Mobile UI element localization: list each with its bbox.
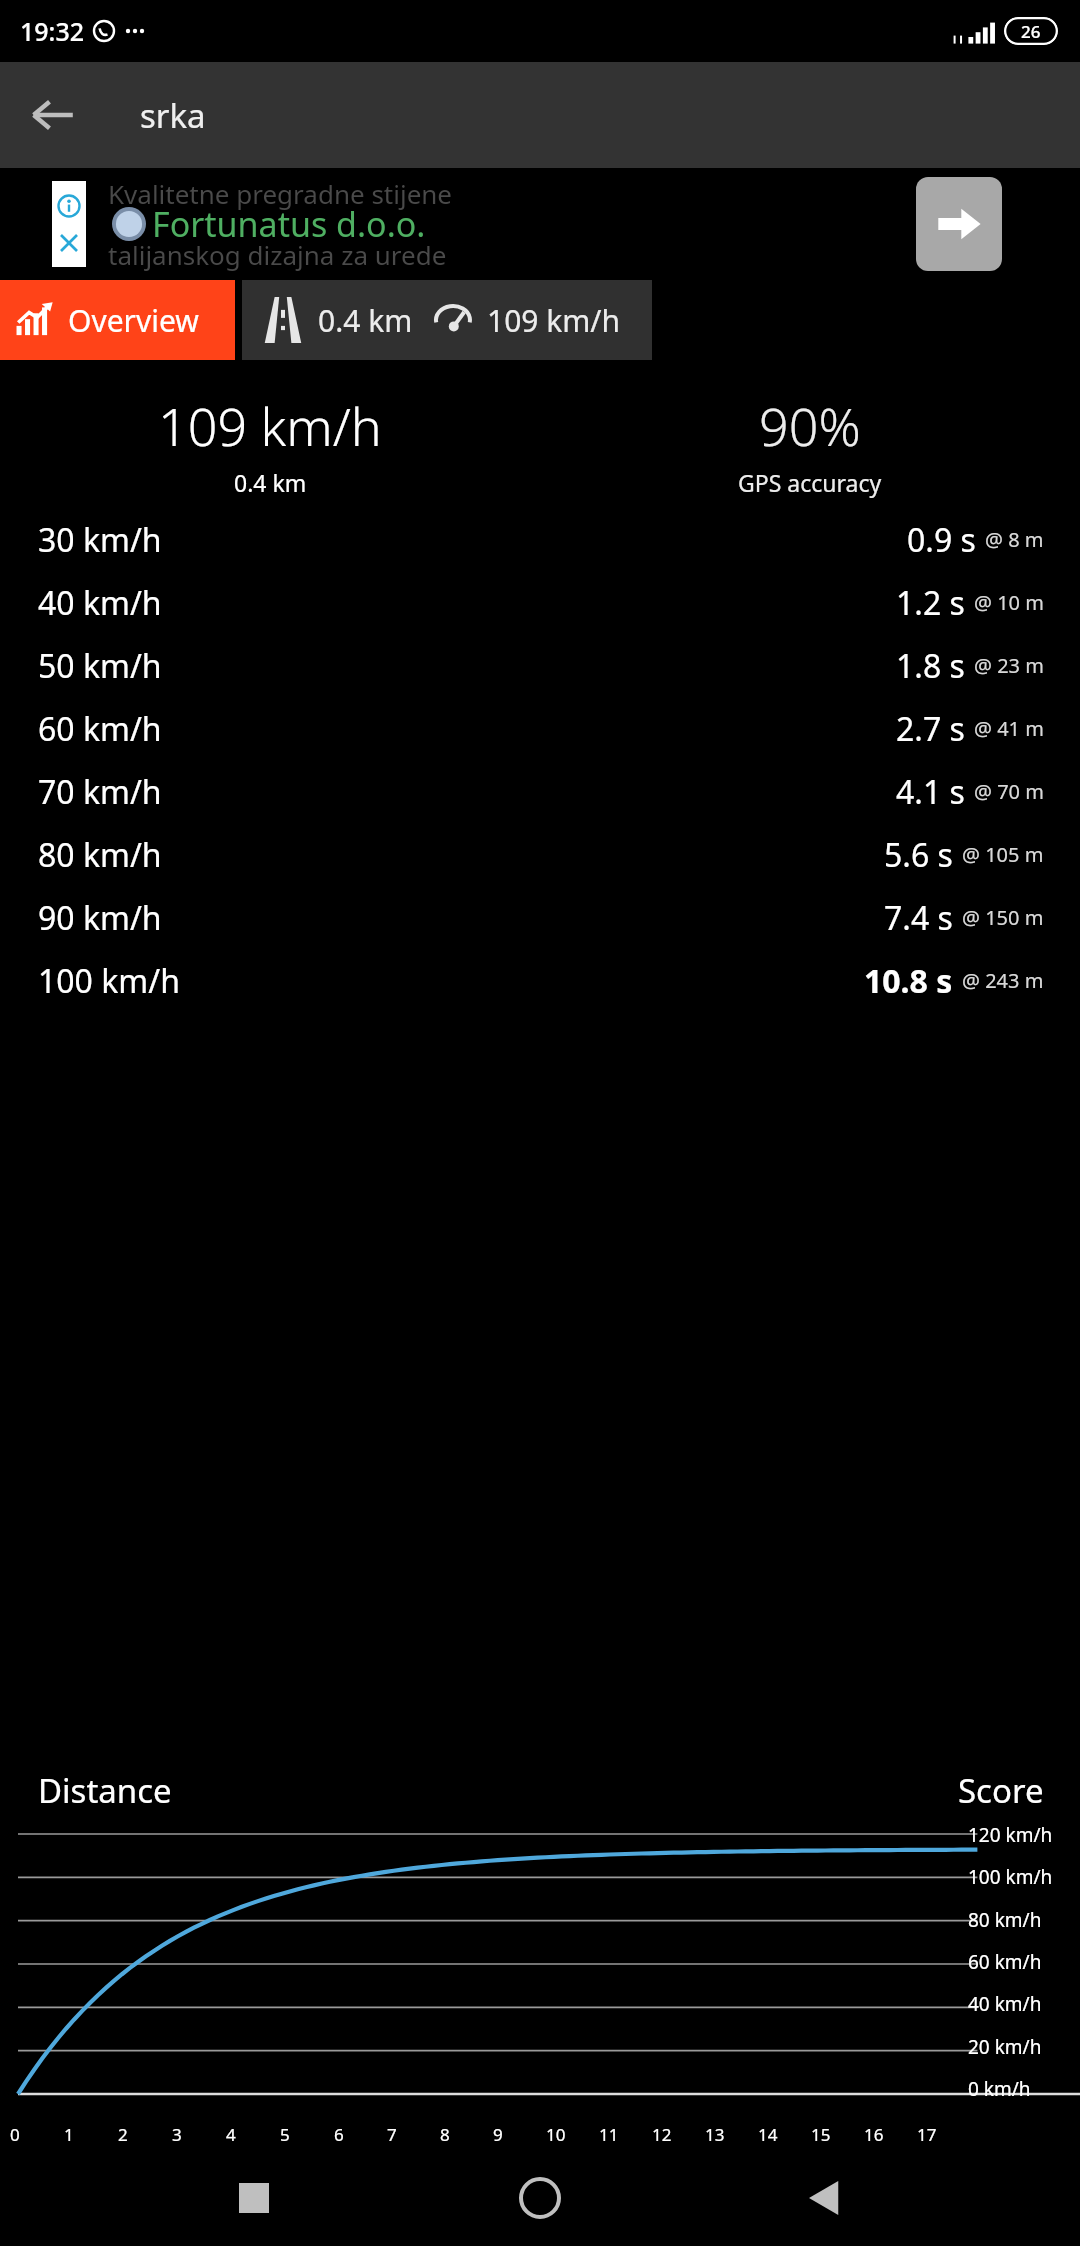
staticText: 15 — [811, 2123, 831, 2146]
staticText: GPS accuracy — [738, 467, 882, 498]
staticText: 2 — [118, 2123, 128, 2146]
staticText: Overview — [68, 300, 199, 341]
staticText: 12 — [652, 2123, 672, 2146]
staticText: 100 km/h — [38, 959, 180, 1003]
staticText: 90 km/h — [38, 896, 162, 940]
staticText: 109 km/h — [487, 300, 621, 341]
staticText: @ 23 m — [974, 652, 1044, 679]
staticText: @ 70 m — [974, 778, 1044, 805]
staticText: 17 — [917, 2123, 937, 2146]
staticText: 7 — [387, 2123, 397, 2146]
staticText: 20 km/h — [968, 2034, 1042, 2060]
staticText: 2.7 s — [896, 707, 965, 751]
staticText: 19:32 — [20, 14, 85, 48]
staticText: 100 km/h — [968, 1864, 1053, 1890]
staticText: 16 — [864, 2123, 884, 2146]
staticText: @ 10 m — [974, 589, 1044, 616]
staticText: @ 8 m — [985, 526, 1044, 553]
staticText: 0 km/h — [968, 2076, 1031, 2102]
staticText: 109 km/h — [158, 390, 382, 461]
staticText: talijanskog dizajna za urede — [108, 237, 447, 272]
staticText: 9 — [493, 2123, 503, 2146]
staticText: 7.4 s — [884, 896, 953, 940]
staticText: 0.9 s — [907, 518, 976, 562]
button[interactable]: 80 km/h — [38, 823, 1044, 886]
staticText: 26 — [1021, 20, 1041, 43]
button[interactable]: 40 km/h — [38, 571, 1044, 634]
button[interactable]: 50 km/h — [38, 634, 1044, 697]
button[interactable]: 30 km/h — [38, 508, 1044, 571]
button[interactable]: 60 km/h — [38, 697, 1044, 760]
button[interactable]: Close ad — [58, 232, 80, 254]
staticText: @ 150 m — [962, 904, 1044, 931]
staticText: 0 — [10, 2123, 20, 2146]
button[interactable]: 70 km/h — [38, 760, 1044, 823]
button[interactable]: Home — [508, 2166, 572, 2230]
staticText: Score — [958, 1768, 1044, 1810]
staticText: 4 — [226, 2123, 236, 2146]
staticText: @ 41 m — [974, 715, 1044, 742]
staticText: Distance — [38, 1768, 172, 1810]
button[interactable]: 100 km/h — [38, 949, 1044, 1012]
staticText: 40 km/h — [968, 1991, 1042, 2017]
button[interactable]: Ad info — [57, 194, 81, 218]
staticText: 40 km/h — [38, 581, 162, 625]
staticText: 8 — [440, 2123, 450, 2146]
staticText: 14 — [758, 2123, 778, 2146]
button[interactable]: Open ad — [916, 177, 1002, 271]
staticText: 30 km/h — [38, 518, 162, 562]
staticText: 60 km/h — [968, 1949, 1042, 1975]
button[interactable]: Kvalitetne pregradne stijene — [0, 168, 1080, 280]
staticText: Kvalitetne pregradne stijene — [108, 176, 453, 211]
button[interactable]: Back — [22, 84, 84, 146]
staticText: 3 — [172, 2123, 182, 2146]
staticText: 0.4 km — [318, 300, 413, 341]
staticText: 80 km/h — [968, 1907, 1042, 1933]
button[interactable]: 0.4 km — [242, 280, 652, 360]
staticText: @ 243 m — [962, 967, 1044, 994]
staticText: 5 — [280, 2123, 290, 2146]
staticText: srka — [140, 93, 206, 138]
staticText: 6 — [334, 2123, 344, 2146]
staticText: @ 105 m — [962, 841, 1044, 868]
staticText: 1.8 s — [896, 644, 965, 688]
button[interactable]: 90 km/h — [38, 886, 1044, 949]
staticText: 5.6 s — [884, 833, 953, 877]
button[interactable]: Back — [794, 2166, 858, 2230]
staticText: 4.1 s — [896, 770, 965, 814]
staticText: 1.2 s — [896, 581, 965, 625]
staticText: 11 — [599, 2123, 619, 2146]
staticText: 120 km/h — [968, 1822, 1053, 1848]
staticText: 50 km/h — [38, 644, 162, 688]
staticText: 10 — [546, 2123, 566, 2146]
staticText: 0.4 km — [234, 467, 307, 498]
staticText: Fortunatus d.o.o. — [152, 201, 426, 247]
staticText: 10.8 s — [864, 959, 953, 1003]
staticText: 90% — [759, 390, 861, 461]
staticText: 70 km/h — [38, 770, 162, 814]
staticText: 60 km/h — [38, 707, 162, 751]
staticText: 80 km/h — [38, 833, 162, 877]
button[interactable]: Recents — [222, 2166, 286, 2230]
staticText: 13 — [705, 2123, 725, 2146]
staticText: 1 — [64, 2123, 74, 2146]
button[interactable]: Overview — [0, 280, 235, 360]
